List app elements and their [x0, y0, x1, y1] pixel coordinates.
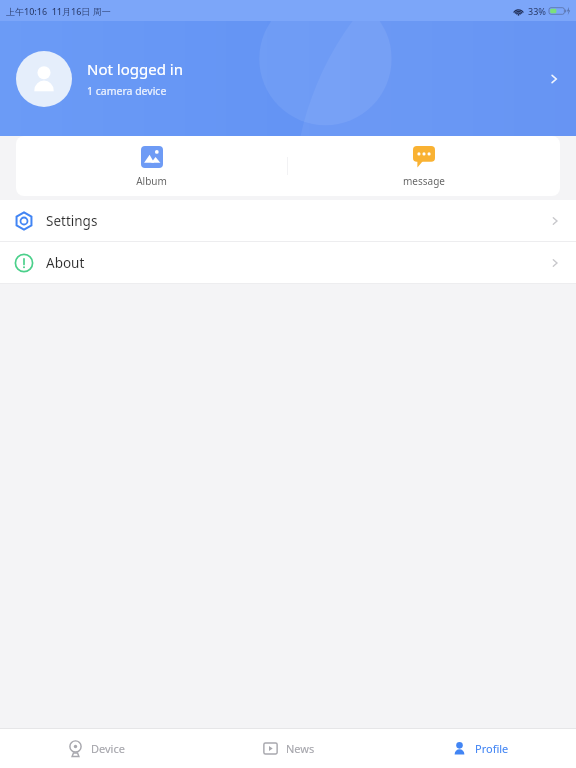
staticText: 上午10:16 11月16日 周一	[6, 5, 111, 17]
button[interactable]: News	[192, 729, 384, 768]
button[interactable]: message	[288, 136, 560, 196]
staticText: Profile	[475, 741, 509, 756]
staticText: Device	[91, 741, 125, 756]
button[interactable]: Settings	[0, 200, 576, 241]
staticText: About	[46, 254, 548, 272]
staticText: 33%	[528, 5, 546, 17]
staticText: Not logged in	[87, 59, 183, 79]
button[interactable]: Not logged in	[0, 21, 576, 136]
button[interactable]: Profile	[384, 729, 576, 768]
staticText: message	[403, 174, 445, 188]
staticText: Album	[136, 174, 167, 188]
staticText: News	[286, 741, 315, 756]
button[interactable]: About	[0, 242, 576, 283]
button[interactable]: Album	[16, 136, 287, 196]
button[interactable]: Device	[0, 729, 192, 768]
staticText: Settings	[46, 212, 548, 230]
staticText: 1 camera device	[87, 84, 167, 98]
